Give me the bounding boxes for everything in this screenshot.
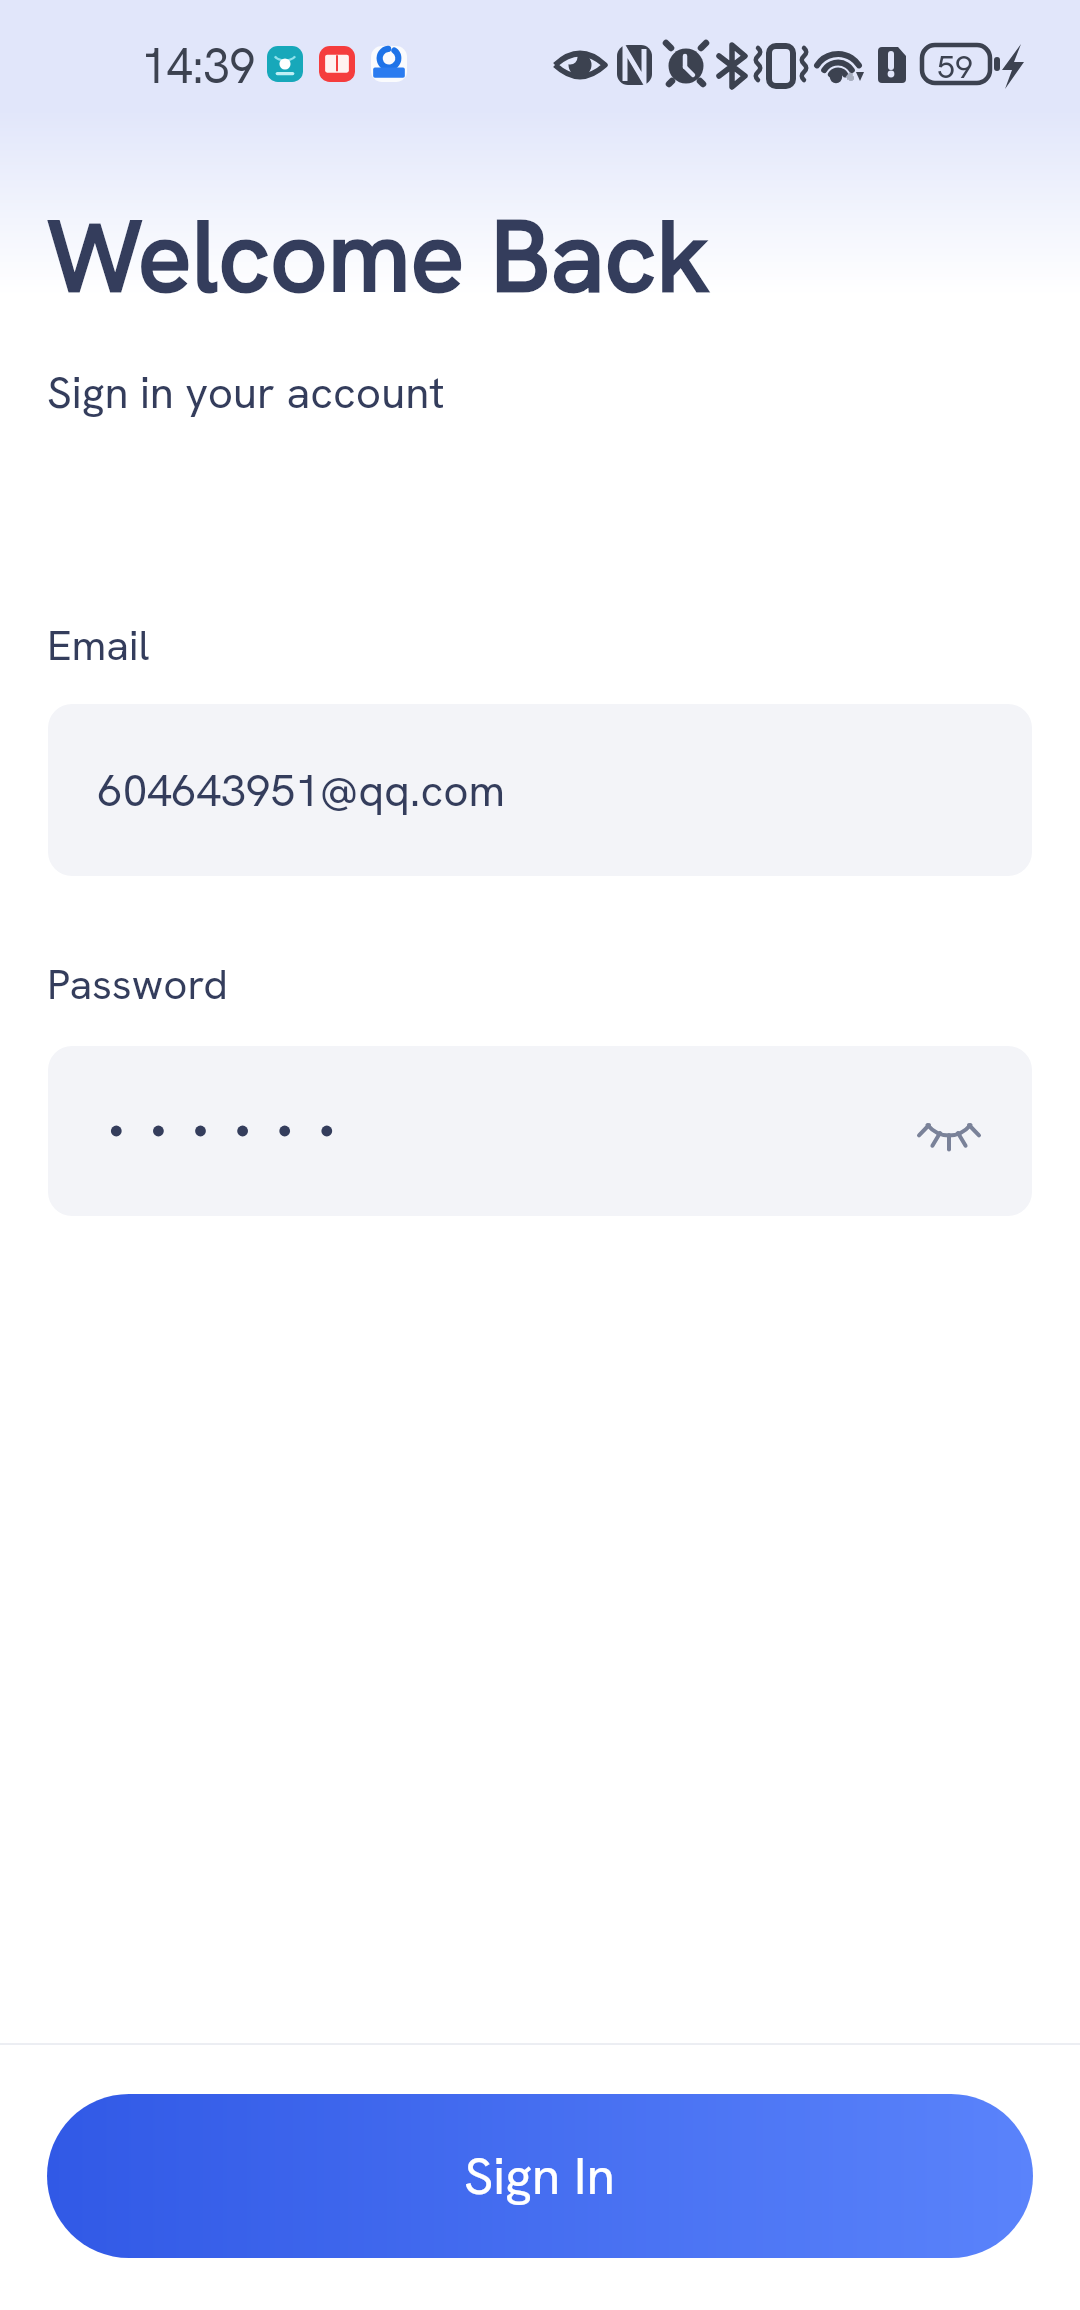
staticText: 604643951@qq.com <box>98 762 506 819</box>
staticText: Welcome Back <box>47 191 710 321</box>
staticText: Password <box>47 957 228 1012</box>
button[interactable]: 604643951@qq.com <box>48 704 1032 876</box>
staticText: Sign in your account <box>47 364 445 421</box>
staticText: 59 <box>937 46 973 88</box>
button[interactable]: Sign In <box>47 2094 1033 2258</box>
button[interactable]: Show password <box>48 1046 1032 1216</box>
staticText: 14:39 <box>141 34 256 98</box>
button[interactable]: Show password <box>901 1090 997 1186</box>
staticText: Sign In <box>464 2142 616 2210</box>
staticText: Email <box>47 618 150 673</box>
